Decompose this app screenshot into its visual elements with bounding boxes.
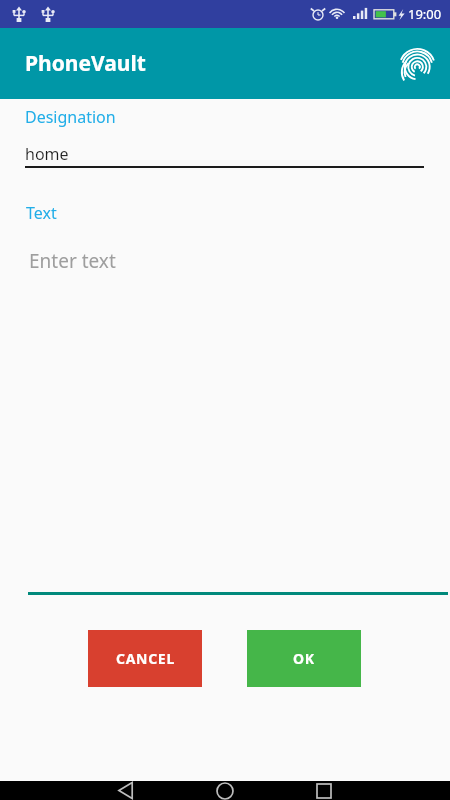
button[interactable]: Back bbox=[102, 781, 150, 800]
button[interactable]: CANCEL bbox=[88, 630, 202, 687]
staticText: CANCEL bbox=[116, 649, 175, 668]
staticText: 19:00 bbox=[408, 5, 442, 23]
staticText: PhoneVault bbox=[25, 49, 146, 78]
staticText: Text bbox=[26, 202, 57, 224]
button[interactable]: Fingerprint unlock bbox=[395, 41, 441, 87]
staticText: home bbox=[25, 143, 69, 165]
button[interactable]: Enter text bbox=[29, 248, 116, 274]
staticText: OK bbox=[293, 649, 315, 668]
button[interactable]: Recent apps bbox=[300, 781, 348, 800]
button[interactable]: OK bbox=[247, 630, 361, 687]
button[interactable]: Home bbox=[201, 781, 249, 800]
staticText: Designation bbox=[25, 106, 116, 128]
